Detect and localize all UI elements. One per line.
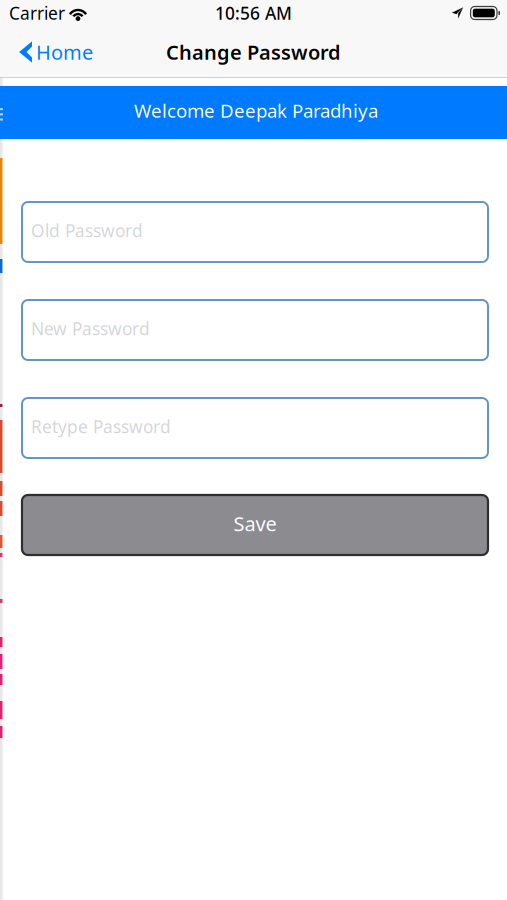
- staticText: Old Password: [31, 219, 143, 242]
- staticText: Retype Password: [31, 415, 171, 438]
- staticText: Change Password: [166, 39, 341, 65]
- staticText: Welcome Deepak Paradhiya: [134, 98, 378, 123]
- button[interactable]: Old Password: [22, 202, 488, 262]
- button[interactable]: New Password: [22, 300, 488, 360]
- staticText: 10:56 AM: [215, 1, 292, 24]
- button[interactable]: Home: [0, 26, 103, 78]
- staticText: Carrier: [9, 1, 65, 24]
- button[interactable]: Retype Password: [22, 398, 488, 458]
- staticText: Home: [36, 39, 93, 65]
- staticText: New Password: [31, 317, 150, 340]
- staticText: Save: [233, 510, 276, 537]
- button[interactable]: Save: [22, 495, 488, 555]
